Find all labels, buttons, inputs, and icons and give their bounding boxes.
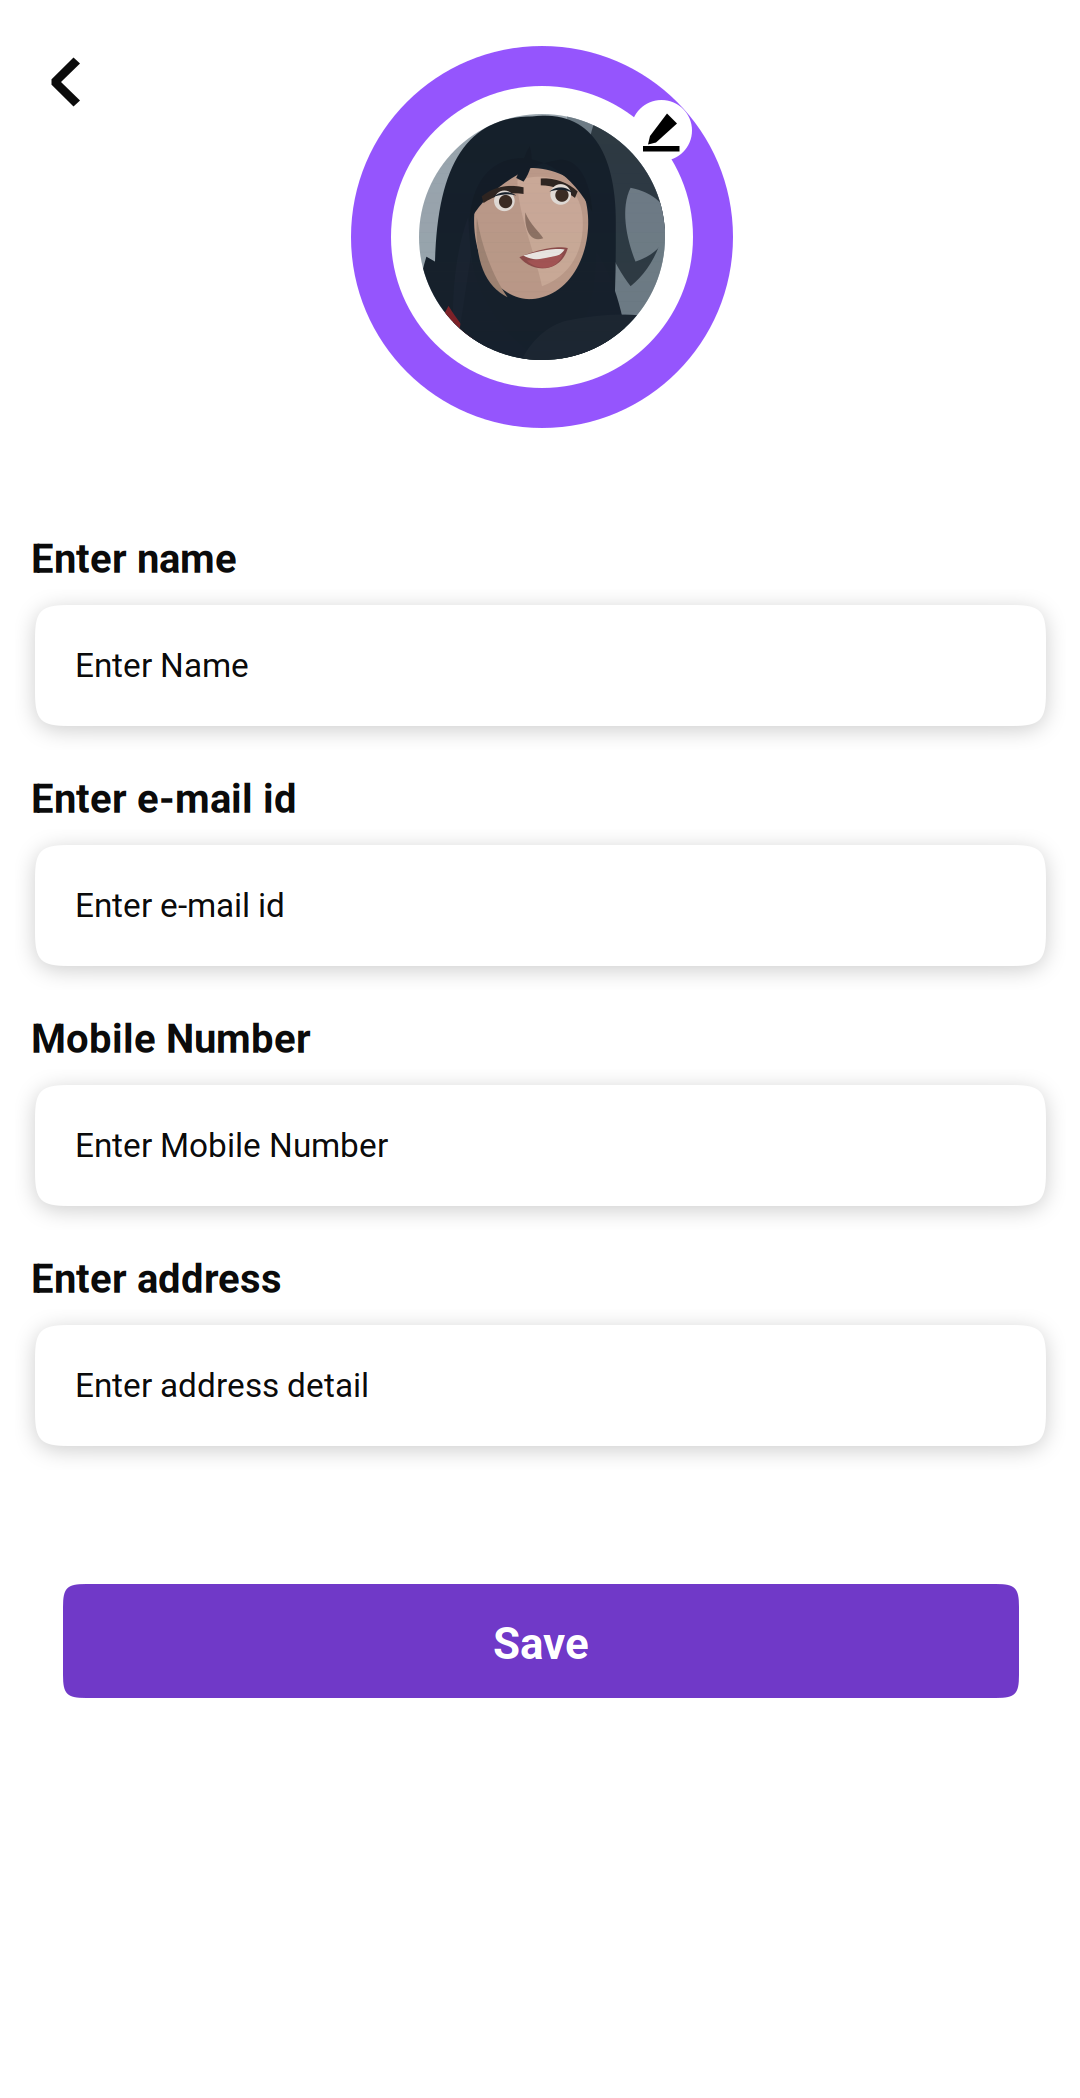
- staticText: Enter e-mail id: [31, 776, 297, 822]
- button[interactable]: Save: [63, 1584, 1019, 1698]
- button[interactable]: Change profile photo: [631, 100, 692, 161]
- staticText: Enter name: [31, 536, 237, 582]
- staticText: Enter Mobile Number: [75, 1126, 388, 1165]
- staticText: Save: [493, 1618, 589, 1670]
- staticText: Mobile Number: [31, 1016, 311, 1062]
- button[interactable]: Enter address detail: [35, 1325, 1046, 1446]
- button[interactable]: Back: [20, 36, 112, 128]
- staticText: Enter e-mail id: [75, 886, 285, 925]
- staticText: Enter Name: [75, 646, 249, 685]
- button[interactable]: Enter Name: [35, 605, 1046, 726]
- button[interactable]: Enter e-mail id: [35, 845, 1046, 966]
- staticText: Enter address: [31, 1256, 282, 1302]
- staticText: Enter address detail: [75, 1366, 369, 1405]
- button[interactable]: Enter Mobile Number: [35, 1085, 1046, 1206]
